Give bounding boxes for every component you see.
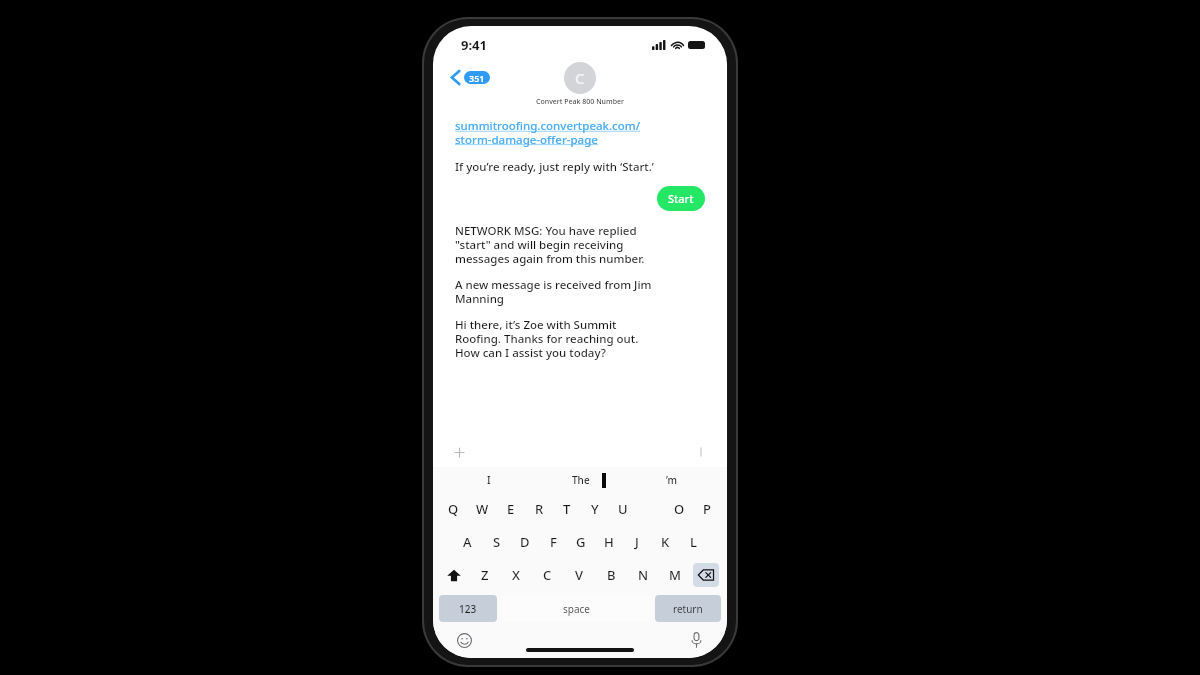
button[interactable]: A: [453, 529, 482, 555]
button[interactable]: Dictation: [687, 631, 705, 649]
button[interactable]: U: [609, 496, 637, 522]
button[interactable]: G: [567, 529, 595, 555]
button[interactable]: Z: [469, 562, 500, 588]
button[interactable]: P: [693, 496, 721, 522]
button[interactable]: Backspace: [693, 563, 719, 587]
button[interactable]: ’m: [626, 467, 717, 493]
staticText: Z: [481, 566, 489, 584]
staticText: 9:41: [461, 36, 487, 54]
button[interactable]: H: [595, 529, 623, 555]
button[interactable]: Back, 351 unread: [449, 68, 492, 87]
button[interactable]: O: [665, 496, 693, 522]
staticText: L: [690, 533, 697, 551]
staticText: E: [507, 500, 515, 518]
staticText: U: [618, 500, 628, 518]
button[interactable]: Q: [439, 496, 468, 522]
button[interactable]: X: [500, 562, 531, 588]
staticText: M: [669, 566, 681, 584]
staticText: G: [576, 533, 586, 551]
staticText: T: [563, 500, 571, 518]
button[interactable]: E: [497, 496, 525, 522]
staticText: N: [638, 566, 649, 584]
button[interactable]: F: [539, 529, 567, 555]
button[interactable]: return: [655, 595, 721, 622]
button[interactable]: V: [563, 562, 595, 588]
button[interactable]: J: [623, 529, 651, 555]
staticText: R: [535, 500, 544, 518]
staticText: I: [487, 473, 491, 487]
staticText: Hi there, it’s Zoe with Summit Roofing. …: [455, 317, 639, 360]
staticText: A new message is received from Jim Manni…: [455, 277, 652, 306]
button[interactable]: L: [679, 529, 707, 555]
button[interactable]: 123: [439, 595, 497, 622]
staticText: P: [703, 500, 711, 518]
staticText: A: [463, 533, 472, 551]
button[interactable]: M: [659, 562, 691, 588]
button[interactable]: I: [443, 467, 535, 493]
staticText: J: [635, 533, 639, 551]
button[interactable]: space: [502, 595, 650, 622]
button[interactable]: Send: [693, 444, 709, 460]
staticText: If you’re ready, just reply with ‘Start.…: [455, 159, 655, 175]
button[interactable]: Emoji: [455, 631, 473, 649]
button[interactable]: S: [482, 529, 511, 555]
staticText: C: [575, 68, 585, 88]
button[interactable]: The: [535, 467, 626, 493]
staticText: Q: [448, 500, 459, 518]
button[interactable]: B: [595, 562, 627, 588]
staticText: Start: [668, 191, 694, 206]
button[interactable]: Start: [657, 186, 705, 211]
staticText: D: [520, 533, 530, 551]
button[interactable]: Y: [581, 496, 609, 522]
staticText: Y: [591, 500, 599, 518]
button[interactable]: R: [525, 496, 553, 522]
staticText: H: [604, 533, 614, 551]
button[interactable]: N: [627, 562, 659, 588]
staticText: V: [575, 566, 583, 584]
button[interactable]: Contact details: [536, 62, 624, 107]
staticText: 351: [469, 72, 485, 84]
button[interactable]: K: [651, 529, 679, 555]
staticText: X: [512, 566, 520, 584]
button[interactable]: T: [553, 496, 581, 522]
button[interactable]: summitroofing.convertpeak.com/ storm-dam…: [455, 118, 641, 147]
staticText: Convert Peak 800 Number: [536, 97, 624, 107]
staticText: C: [543, 566, 552, 584]
staticText: return: [673, 602, 703, 616]
staticText: K: [661, 533, 670, 551]
staticText: ’m: [666, 473, 678, 487]
button[interactable]: D: [511, 529, 539, 555]
staticText: 123: [459, 602, 477, 616]
button[interactable]: W: [468, 496, 497, 522]
staticText: The: [572, 473, 590, 487]
button[interactable]: C: [531, 562, 563, 588]
staticText: space: [563, 602, 590, 616]
button[interactable]: Add attachment: [451, 444, 467, 460]
staticText: NETWORK MSG: You have replied "start" an…: [455, 223, 645, 266]
staticText: B: [607, 566, 616, 584]
staticText: O: [674, 500, 685, 518]
button[interactable]: Shift: [439, 562, 469, 588]
staticText: S: [493, 533, 501, 551]
staticText: W: [476, 500, 489, 518]
staticText: F: [550, 533, 557, 551]
